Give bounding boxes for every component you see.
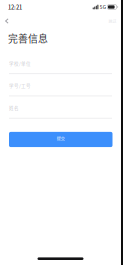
staticText: 提交 (57, 136, 65, 142)
staticText: 5G (100, 3, 106, 10)
button[interactable]: 提交 (9, 132, 112, 147)
staticText: 完善信息 (8, 31, 48, 45)
button[interactable]: 姓名 (9, 96, 112, 119)
staticText: 学校/单位 (9, 60, 31, 66)
staticText: 12:21 (8, 3, 22, 11)
button[interactable]: 跳过 (102, 14, 121, 28)
staticText: 姓名 (9, 104, 19, 111)
staticText: 跳过 (108, 18, 116, 24)
button[interactable]: Back (0, 14, 16, 28)
button[interactable]: 学号/工号 (9, 74, 112, 96)
button[interactable]: 学校/单位 (9, 52, 112, 74)
staticText: 学号/工号 (9, 82, 31, 89)
